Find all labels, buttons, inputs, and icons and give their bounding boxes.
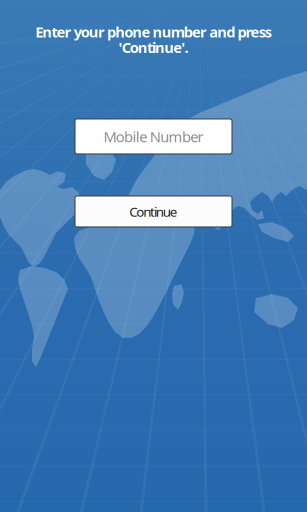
staticText: 'Continue'.	[119, 37, 188, 57]
button[interactable]: Continue	[75, 196, 232, 227]
staticText: Enter your phone number and press	[35, 22, 272, 41]
staticText: Mobile Number	[103, 127, 204, 146]
staticText: Continue	[129, 203, 178, 220]
